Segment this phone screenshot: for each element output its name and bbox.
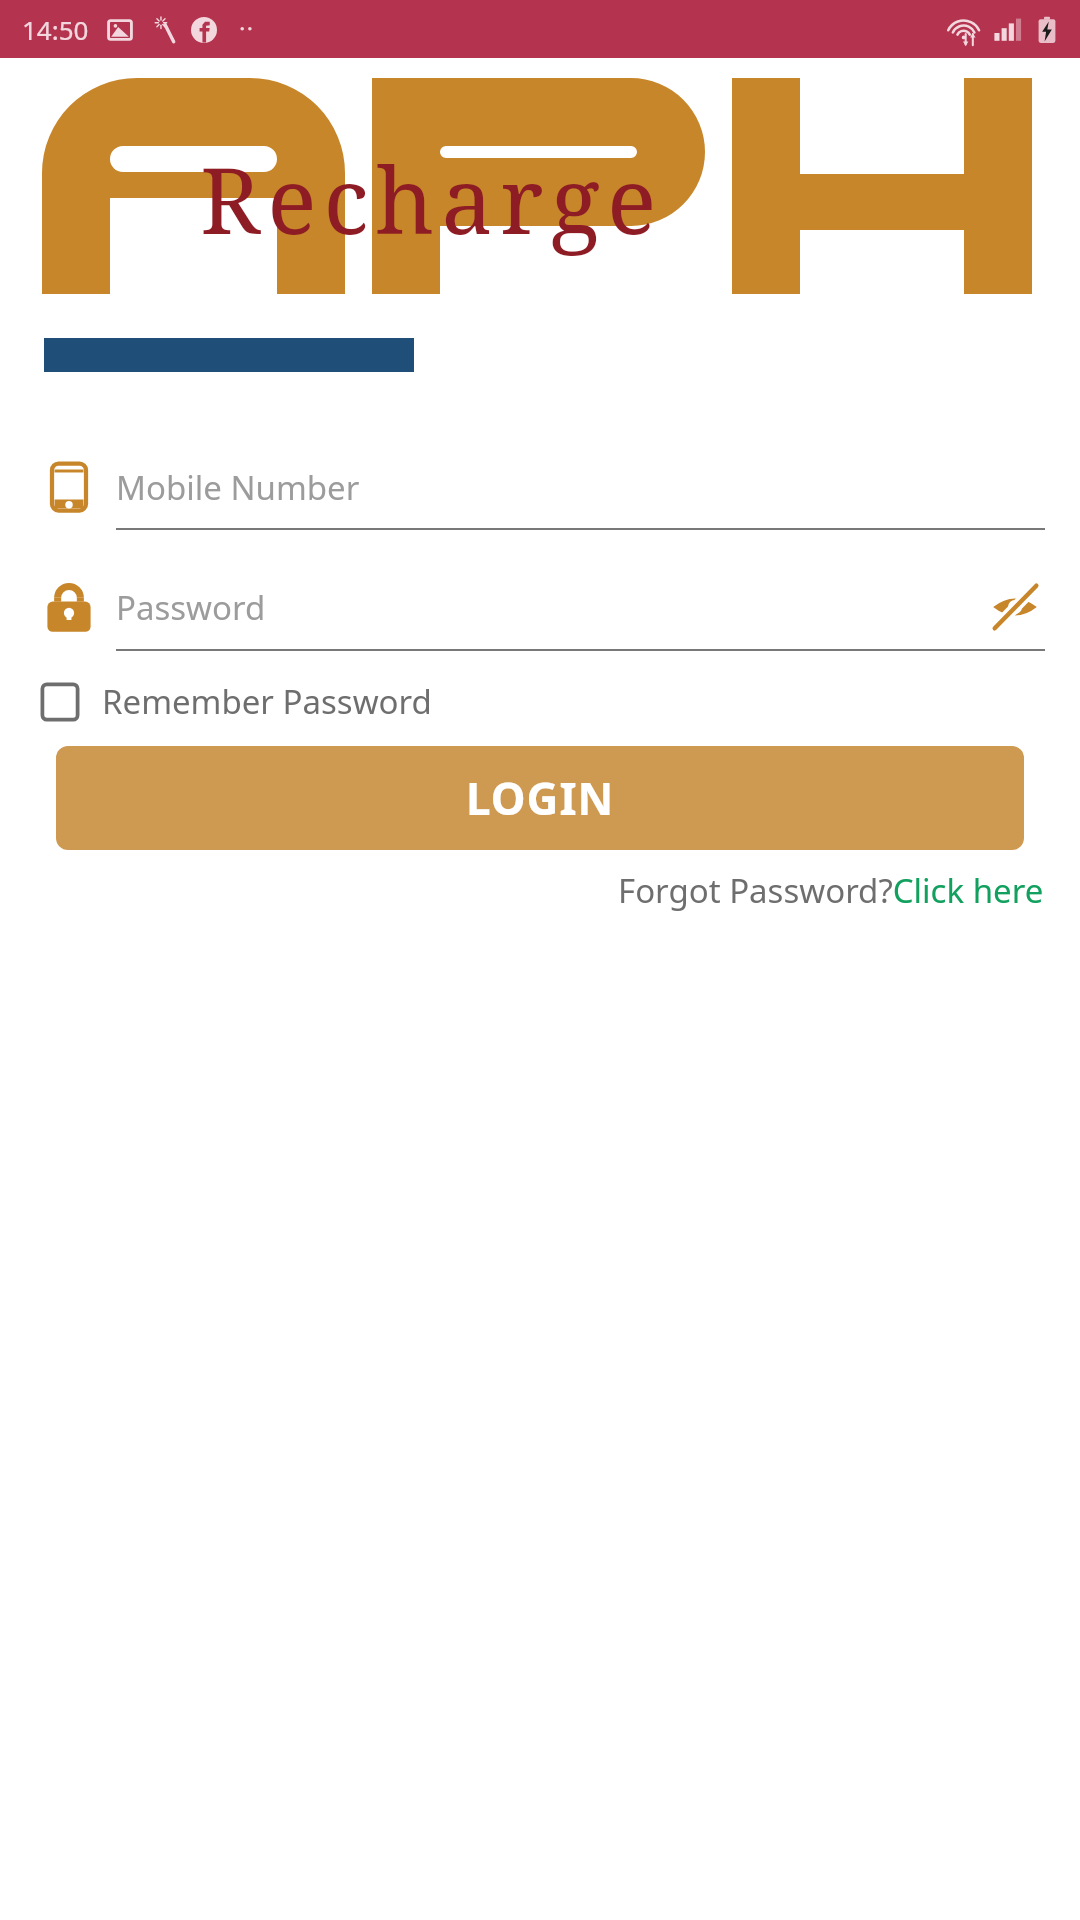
button[interactable]: Show password: [985, 577, 1045, 637]
button[interactable]: Forgot Password?Click here: [618, 868, 1044, 913]
button[interactable]: Remember Password: [38, 679, 432, 724]
staticText: Password: [116, 585, 266, 630]
staticText: Remember Password: [102, 679, 432, 724]
staticText: 14:50: [22, 12, 89, 47]
staticText: Recharge: [200, 136, 664, 261]
staticText: LOGIN: [466, 768, 615, 828]
staticText: Mobile Number: [116, 465, 360, 510]
staticText: Forgot Password?Click here: [618, 868, 1044, 913]
button[interactable]: LOGIN: [56, 746, 1024, 850]
